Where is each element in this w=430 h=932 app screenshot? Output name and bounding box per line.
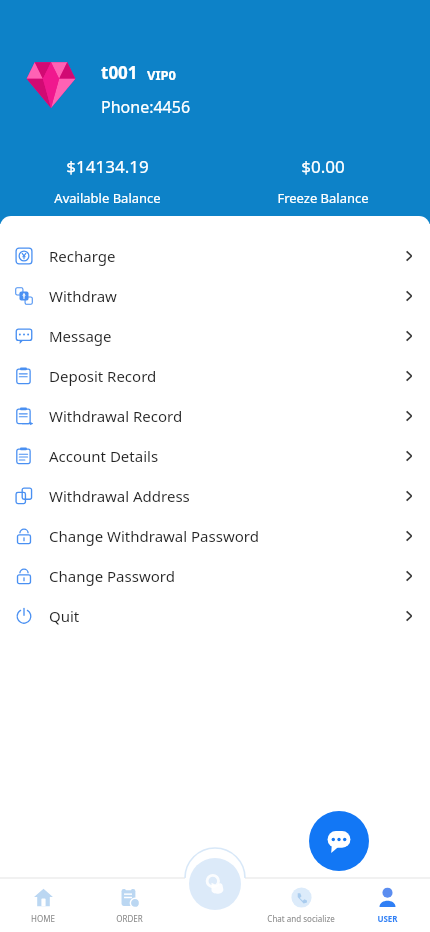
staticText: VIP0 — [147, 66, 177, 84]
staticText: Available Balance — [54, 189, 161, 207]
button[interactable]: Chat and socialize — [258, 878, 344, 932]
button[interactable]: USER — [344, 878, 430, 932]
staticText: Withdrawal Address — [49, 486, 190, 506]
staticText: Withdraw — [49, 286, 117, 306]
staticText: t001 — [101, 61, 138, 84]
staticText: HOME — [31, 913, 55, 924]
staticText: USER — [377, 913, 398, 924]
button[interactable]: ORDER — [86, 878, 172, 932]
button[interactable]: Tap — [172, 878, 258, 932]
staticText: Change Withdrawal Password — [49, 526, 259, 546]
button[interactable]: Withdrawal Address — [0, 476, 430, 516]
button[interactable]: Quit — [0, 596, 430, 636]
staticText: Account Details — [49, 446, 159, 466]
button[interactable]: HOME — [0, 878, 86, 932]
staticText: ORDER — [116, 913, 143, 924]
staticText: Change Password — [49, 566, 175, 586]
staticText: Chat and socialize — [267, 913, 335, 924]
button[interactable]: Chat — [309, 811, 369, 871]
staticText: Withdrawal Record — [49, 406, 183, 426]
staticText: Freeze Balance — [277, 189, 369, 207]
button[interactable]: Withdrawal Record — [0, 396, 430, 436]
staticText: Phone:4456 — [101, 96, 191, 118]
staticText: Message — [49, 326, 112, 346]
button[interactable]: Recharge — [0, 236, 430, 276]
staticText: Recharge — [49, 246, 116, 266]
button[interactable]: Change Withdrawal Password — [0, 516, 430, 556]
staticText: $14134.19 — [66, 155, 149, 178]
staticText: $0.00 — [301, 155, 345, 178]
button[interactable]: Withdraw — [0, 276, 430, 316]
button[interactable]: Message — [0, 316, 430, 356]
button[interactable]: Account Details — [0, 436, 430, 476]
staticText: Deposit Record — [49, 366, 157, 386]
button[interactable]: Deposit Record — [0, 356, 430, 396]
staticText: Quit — [49, 606, 80, 626]
button[interactable]: Change Password — [0, 556, 430, 596]
